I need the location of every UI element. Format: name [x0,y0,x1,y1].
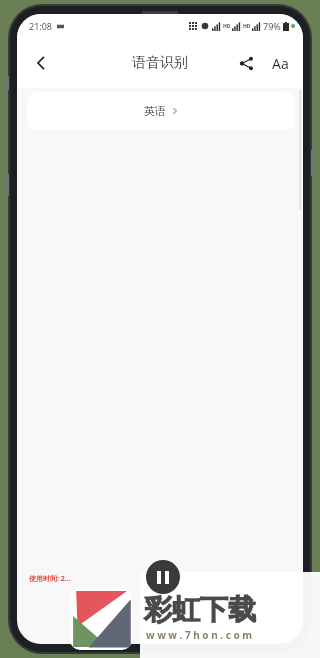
staticText: HD [223,23,231,30]
staticText: 79% [263,20,281,32]
button[interactable]: 英语 [27,92,295,130]
staticText: 英语 [144,104,166,118]
button[interactable]: Share [229,46,263,80]
staticText: w w w . 7 h o n . c o m [146,628,253,642]
staticText: 彩虹下载 [144,592,256,627]
staticText: HD [243,23,251,30]
button[interactable]: Font size [263,46,297,80]
staticText: 使用时间: 2… [29,574,71,584]
button[interactable]: Back [23,45,59,81]
staticText: 语音识别 [132,54,188,72]
staticText: 21:08 [29,20,53,32]
staticText: Aa [272,54,289,73]
